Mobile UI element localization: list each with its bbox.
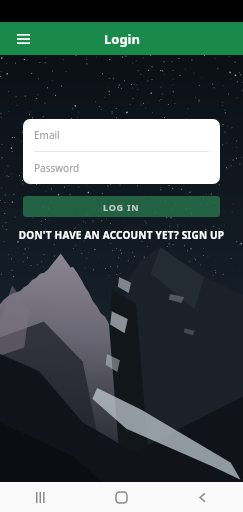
staticText: Password <box>34 161 80 175</box>
button[interactable]: Open navigation menu <box>8 24 38 54</box>
staticText: Login <box>104 30 140 48</box>
staticText: DON'T HAVE AN ACCOUNT YET? SIGN UP <box>0 228 243 242</box>
staticText: Email <box>34 128 60 142</box>
button[interactable]: Home <box>81 482 162 512</box>
staticText: LOG IN <box>103 201 140 213</box>
button[interactable]: Back <box>162 482 243 512</box>
button[interactable]: Password <box>23 152 220 184</box>
button[interactable]: LOG IN <box>23 196 220 217</box>
button[interactable]: Recent apps <box>0 482 81 512</box>
button[interactable]: DON'T HAVE AN ACCOUNT YET? SIGN UP <box>0 228 243 242</box>
button[interactable]: Email <box>23 119 220 151</box>
